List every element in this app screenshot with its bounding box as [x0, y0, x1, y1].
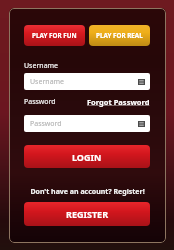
button[interactable]: Username: [24, 73, 150, 90]
staticText: REGISTER: [66, 208, 109, 220]
button[interactable]: Don't have an account? Register!: [24, 187, 150, 197]
other: Keyboard: [138, 121, 145, 127]
staticText: Don't have an account? Register!: [30, 187, 145, 197]
staticText: PLAY FOR FUN: [32, 31, 77, 40]
staticText: Username: [24, 61, 59, 71]
button[interactable]: PLAY FOR FUN: [24, 25, 85, 46]
button[interactable]: REGISTER: [24, 202, 150, 226]
staticText: Password: [24, 97, 56, 107]
other: Keyboard: [138, 79, 145, 85]
staticText: Password: [30, 119, 62, 129]
button[interactable]: LOGIN: [24, 145, 150, 168]
button[interactable]: Forgot Password: [87, 97, 150, 107]
staticText: Forgot Password: [87, 97, 150, 107]
button[interactable]: Password: [24, 115, 150, 132]
button[interactable]: PLAY FOR REAL: [89, 25, 150, 46]
staticText: PLAY FOR REAL: [96, 31, 143, 40]
staticText: LOGIN: [72, 151, 102, 163]
staticText: Username: [30, 77, 65, 87]
